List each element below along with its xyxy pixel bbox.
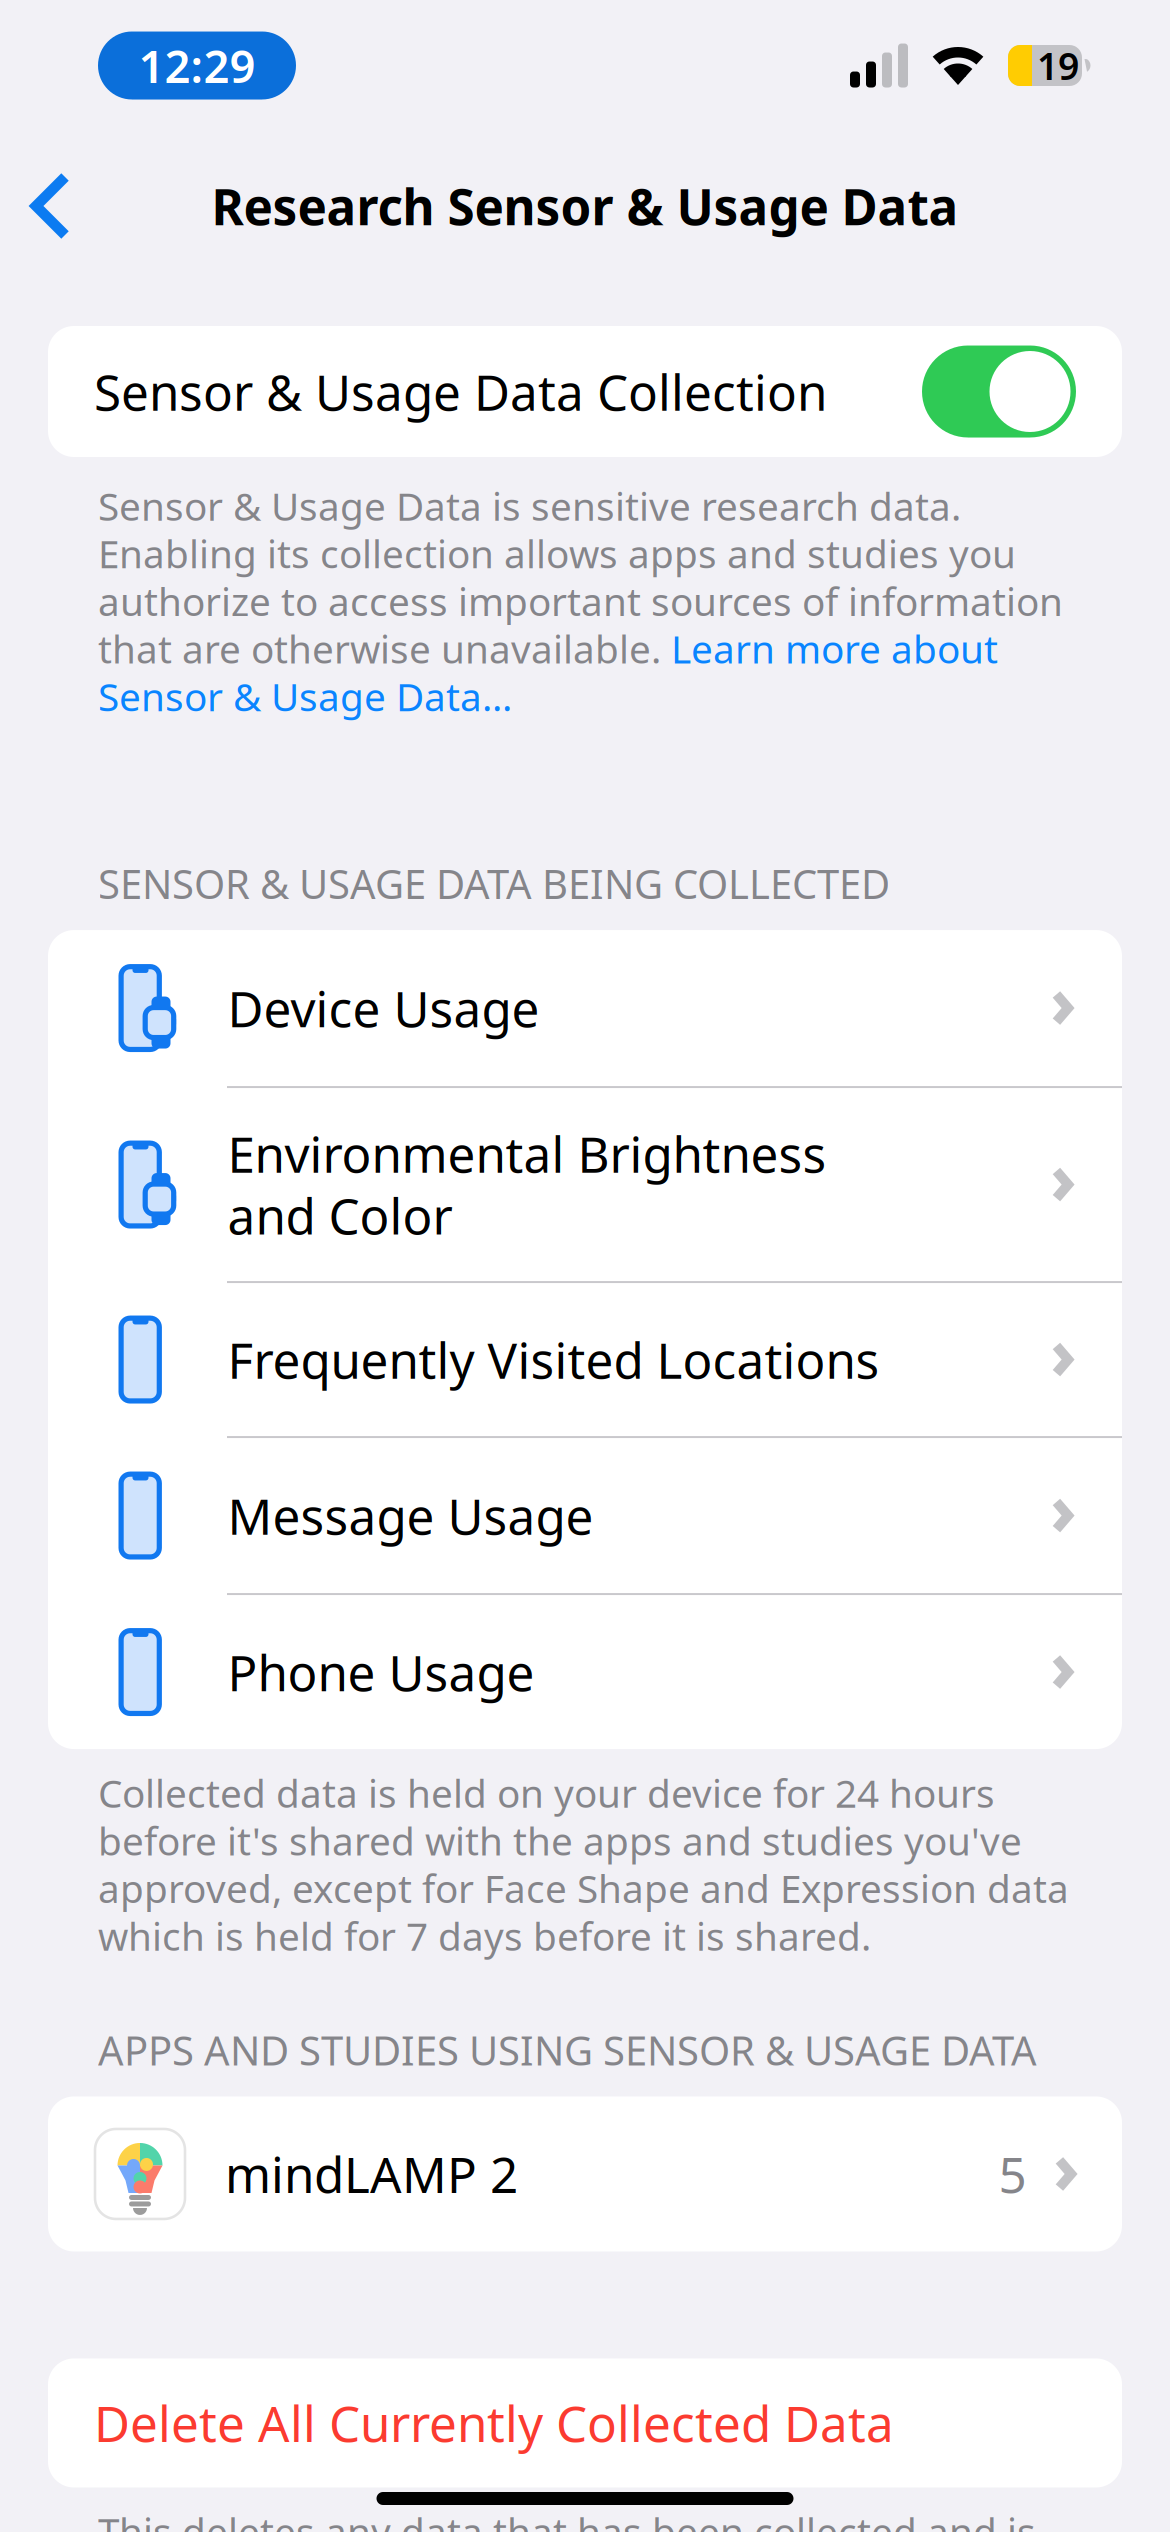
button[interactable]: Delete All Currently Collected Data xyxy=(48,2358,1122,2487)
staticText: 5 xyxy=(998,2141,1026,2207)
staticText: Device Usage xyxy=(227,975,539,1041)
button[interactable]: mindLAMP 2 xyxy=(48,2096,1122,2251)
button[interactable]: Back xyxy=(0,143,119,269)
staticText: APPS AND STUDIES USING SENSOR & USAGE DA… xyxy=(98,2023,1037,2076)
staticText: Delete All Currently Collected Data xyxy=(94,2390,894,2456)
staticText: 12:29 xyxy=(138,35,255,96)
staticText: This deletes any data that has been coll… xyxy=(98,2505,1036,2532)
button[interactable]: Environmental Brightness and Color xyxy=(48,1088,1122,1281)
staticText: Frequently Visited Locations xyxy=(227,1327,879,1392)
staticText: Message Usage xyxy=(227,1483,593,1548)
staticText: Research Sensor & Usage Data xyxy=(211,173,958,239)
staticText: SENSOR & USAGE DATA BEING COLLECTED xyxy=(98,857,890,910)
staticText: Environmental Brightness and Color xyxy=(227,1121,826,1248)
button[interactable]: Message Usage xyxy=(48,1438,1122,1593)
staticText: Phone Usage xyxy=(227,1639,534,1705)
staticText: Sensor & Usage Data is sensitive researc… xyxy=(98,480,1063,722)
staticText: Collected data is held on your device fo… xyxy=(98,1767,1069,1961)
button[interactable]: Device Usage xyxy=(48,930,1122,1086)
button[interactable]: Phone Usage xyxy=(48,1595,1122,1749)
button[interactable]: Sensor & Usage Data Collection xyxy=(48,326,1122,457)
button[interactable]: Frequently Visited Locations xyxy=(48,1283,1122,1436)
staticText: mindLAMP 2 xyxy=(225,2141,518,2207)
staticText: 19 xyxy=(1037,41,1079,90)
staticText: Sensor & Usage Data Collection xyxy=(94,359,827,424)
